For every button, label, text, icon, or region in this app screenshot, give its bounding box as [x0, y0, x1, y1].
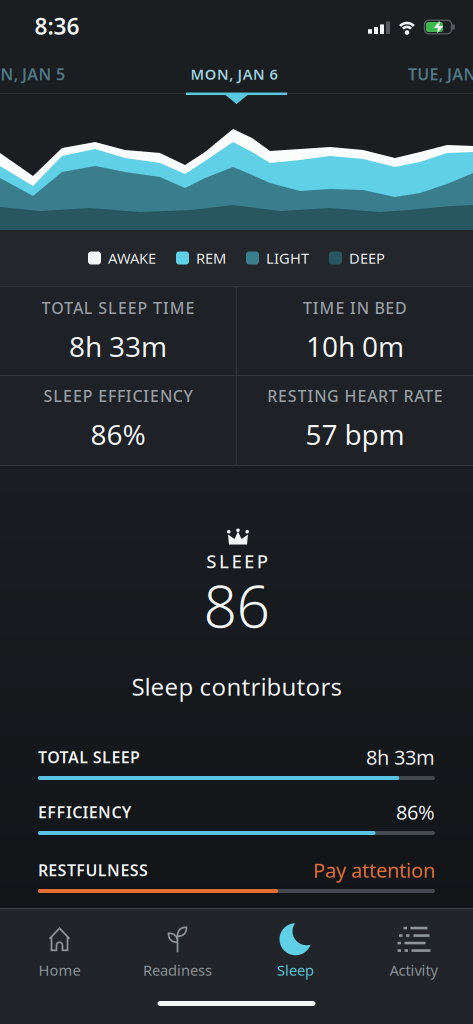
staticText: 86: [203, 566, 269, 644]
button[interactable]: TUE, JAN 7: [408, 63, 473, 85]
staticText: SLEEP EFFICIENCY: [43, 385, 192, 406]
staticText: REM: [196, 248, 226, 268]
staticText: AWAKE: [108, 248, 156, 268]
staticText: 86%: [396, 799, 435, 825]
staticText: RESTING HEART RATE: [267, 385, 443, 406]
staticText: TOTAL SLEEP TIME: [41, 297, 194, 318]
button[interactable]: Activity: [354, 916, 472, 988]
staticText: 86%: [90, 415, 145, 453]
button[interactable]: Sleep: [236, 916, 354, 988]
staticText: Home: [38, 960, 80, 980]
staticText: E: [244, 549, 254, 573]
staticText: E: [231, 549, 241, 573]
button[interactable]: Readiness: [118, 916, 236, 988]
staticText: EFFICIENCY: [38, 801, 132, 823]
staticText: DEEP: [349, 248, 385, 268]
button[interactable]: SUN, JAN 5: [0, 63, 65, 85]
staticText: Activity: [389, 960, 437, 980]
staticText: SUN, JAN 5: [0, 63, 65, 85]
button[interactable]: MON, JAN 6: [164, 59, 304, 89]
staticText: Sleep contributors: [131, 671, 341, 702]
staticText: Sleep: [277, 960, 314, 980]
staticText: 57 bpm: [305, 415, 404, 453]
staticText: Pay attention: [313, 857, 435, 883]
staticText: MON, JAN 6: [191, 64, 277, 84]
staticText: TOTAL SLEEP: [38, 746, 140, 768]
staticText: 10h 0m: [306, 327, 404, 365]
staticText: 8h 33m: [69, 327, 167, 365]
staticText: S: [206, 549, 216, 573]
staticText: 8:36: [34, 11, 79, 41]
staticText: LIGHT: [266, 248, 309, 268]
staticText: L: [219, 549, 229, 573]
staticText: 8h 33m: [366, 744, 435, 770]
staticText: TIME IN BED: [303, 297, 407, 318]
staticText: TUE, JAN 7: [408, 63, 473, 85]
staticText: Readiness: [143, 960, 212, 980]
staticText: P: [257, 549, 268, 573]
button[interactable]: Home: [0, 916, 118, 988]
staticText: RESTFULNESS: [38, 859, 148, 881]
